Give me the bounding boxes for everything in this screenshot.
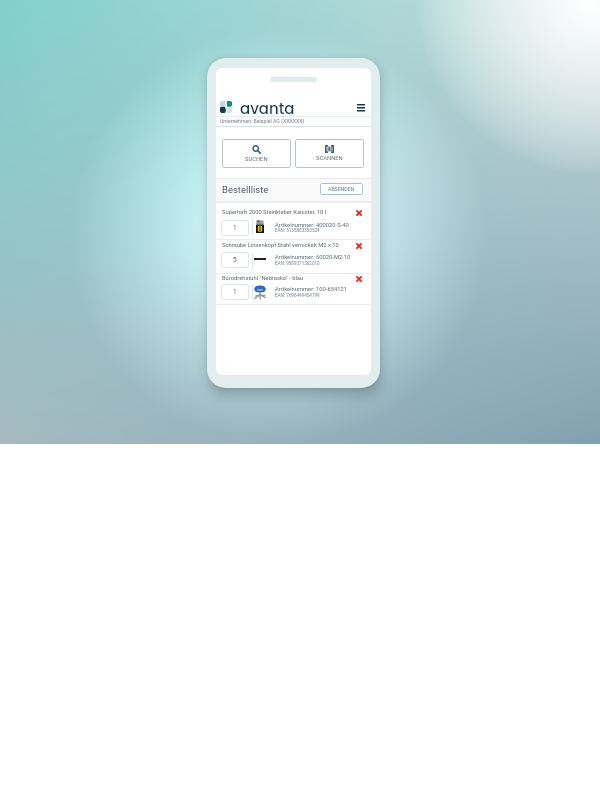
staticText: avanta [240,98,295,119]
staticText: 5 [233,256,237,264]
staticText: Superhaft 2000 Steinkleber Kanister, 10 … [222,209,350,216]
staticText: Artikelnummer: 100-654121 [275,286,347,293]
button[interactable]: Menü öffnen [351,99,371,115]
button[interactable]: 1 [221,284,249,300]
staticText: EAN: 7696449454799 [275,293,320,298]
staticText: Schraube Linsenkopf Stahl vernickelt M2 … [222,242,350,249]
staticText: 1 [233,288,237,296]
staticText: Bürodrehstuhl "Nebraska" - blau [222,275,350,282]
staticText: SCANNEN [316,155,343,162]
staticText: ABSENDEN [328,186,355,192]
button[interactable]: SCANNEN [295,139,364,168]
staticText: EAN: 9589371362010 [275,261,320,266]
staticText: Artikelnummer: 60020-M2-10 [275,254,351,261]
button[interactable]: Position entfernen [353,207,364,218]
button[interactable]: Position entfernen [353,240,364,251]
button[interactable]: SUCHEN [222,139,291,168]
button[interactable]: Position entfernen [353,273,364,284]
staticText: Unternehmen: Beispiel AG (XXXXXX) [220,118,305,124]
button[interactable]: 5 [221,252,249,268]
staticText: Bestellliste [222,184,269,195]
button[interactable]: ABSENDEN [320,183,363,195]
staticText: 1 [233,224,237,232]
staticText: Artikelnummer: 400020-S-40 [275,222,349,229]
button[interactable]: 1 [221,220,249,236]
staticText: EAN: 5138863353524 [275,228,320,233]
staticText: SUCHEN [245,156,268,163]
